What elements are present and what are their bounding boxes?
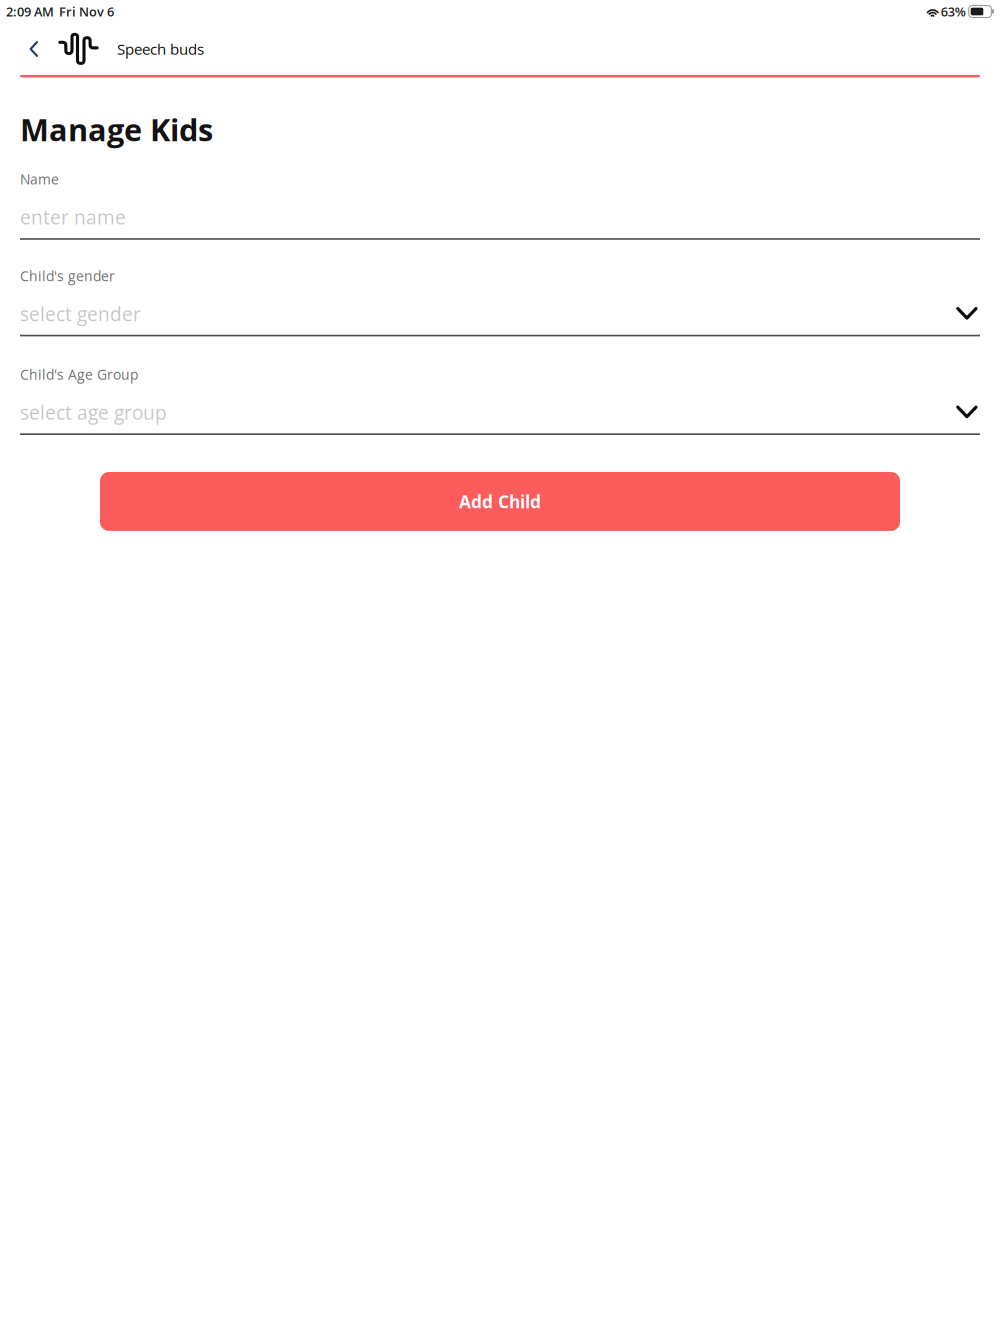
button[interactable]: Add Child [100,472,900,531]
staticText: Child's gender [20,266,115,285]
staticText: Name [20,170,59,189]
staticText: Child's Age Group [20,365,138,384]
staticText: enter name [20,204,126,230]
staticText: select gender [20,301,141,327]
staticText: select age group [20,399,167,425]
button[interactable]: Back [23,29,45,69]
staticText: Add Child [459,490,541,513]
staticText: 2:09 AM [6,3,54,20]
staticText: Fri Nov 6 [59,3,114,20]
staticText: Manage Kids [20,108,213,150]
staticText: 63% [941,3,966,20]
staticText: Speech buds [117,39,204,59]
